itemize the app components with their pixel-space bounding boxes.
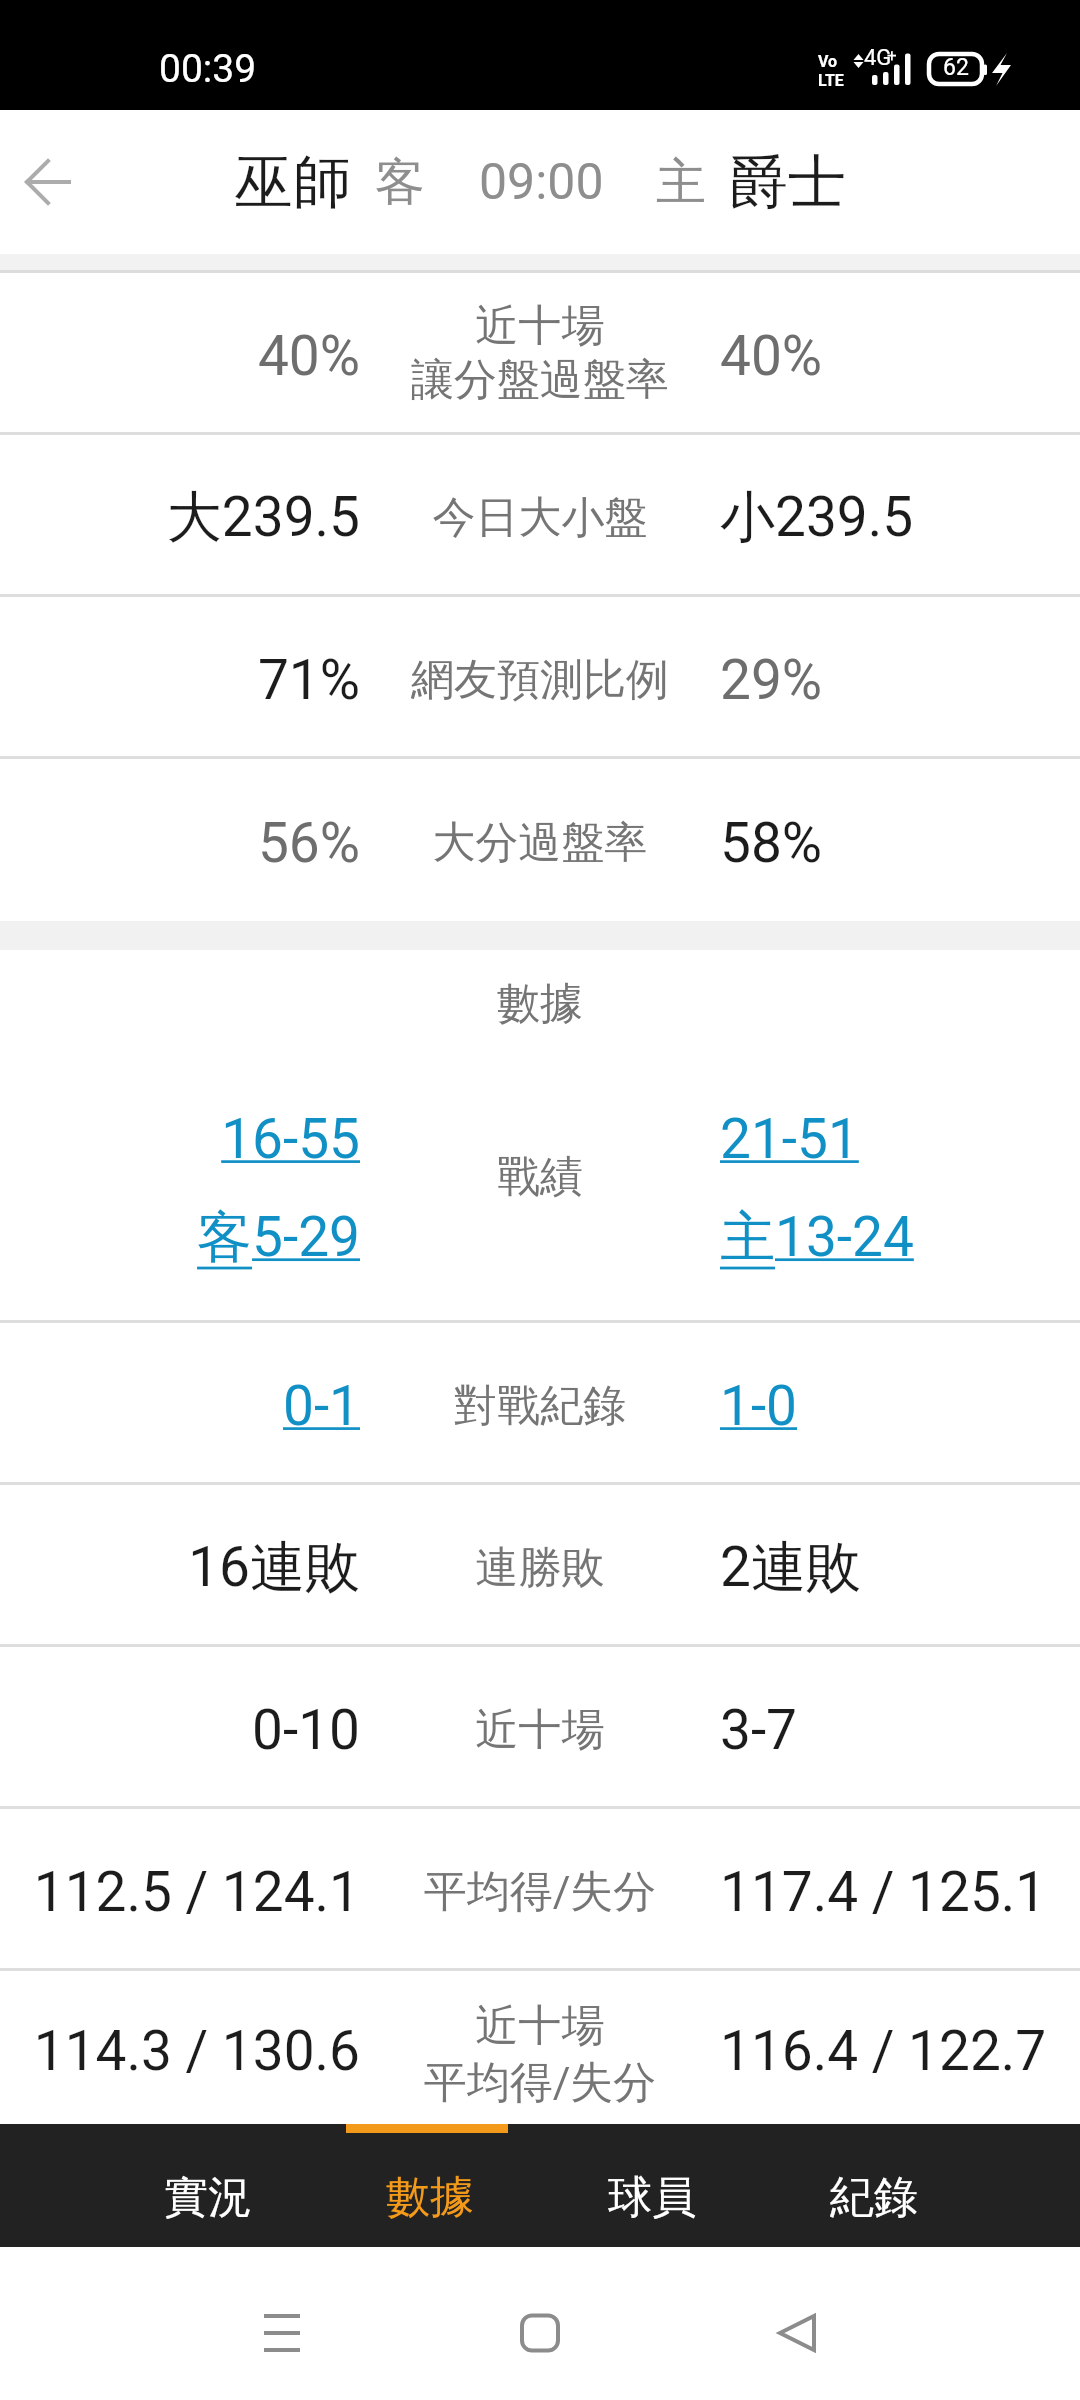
button[interactable]: 40% <box>0 273 1080 432</box>
button[interactable]: 0-10 <box>0 1647 1080 1806</box>
staticText: 112.5 / 124.1 <box>0 1860 360 1924</box>
staticText: 實況 <box>164 2170 252 2225</box>
staticText: 62 <box>943 54 969 81</box>
staticText: 4G <box>864 45 892 71</box>
button[interactable]: 16連敗 <box>0 1485 1080 1644</box>
button[interactable]: 114.3 / 130.6 <box>0 1971 1080 2124</box>
staticText: 小239.5 <box>720 483 1080 552</box>
staticText: 21-51 主13-24 <box>720 1107 1080 1272</box>
staticText: LTE <box>818 71 844 90</box>
staticText: 71% <box>0 648 360 712</box>
staticText: 大分過盤率 <box>360 816 720 870</box>
button[interactable]: Back <box>737 2273 857 2393</box>
button[interactable]: 大239.5 <box>0 435 1080 594</box>
staticText: 戰績 <box>360 1150 720 1204</box>
staticText: + <box>887 45 897 65</box>
staticText: 3-7 <box>720 1698 1080 1762</box>
button[interactable]: 球員 <box>541 2124 763 2247</box>
button[interactable]: 71% <box>0 597 1080 756</box>
staticText: 2連敗 <box>720 1533 1080 1602</box>
staticText: 大239.5 <box>0 483 360 552</box>
staticText: 1-0 <box>720 1374 1080 1438</box>
button[interactable]: Recent apps <box>222 2273 342 2393</box>
staticText: 對戰紀錄 <box>360 1379 720 1433</box>
staticText: 56% <box>0 811 360 875</box>
staticText: 客 <box>375 151 425 214</box>
button[interactable]: 紀錄 <box>763 2124 985 2247</box>
button[interactable]: 0-1 <box>0 1323 1080 1482</box>
staticText: 數據 <box>497 977 583 1031</box>
staticText: 近十場 平均得/失分 <box>360 1999 720 2110</box>
button[interactable]: 16-55 客5-29 <box>0 1058 1080 1320</box>
button[interactable]: 112.5 / 124.1 <box>0 1809 1080 1968</box>
staticText: 連勝敗 <box>360 1541 720 1595</box>
button[interactable]: 實況 <box>97 2124 319 2247</box>
staticText: 114.3 / 130.6 <box>0 2019 360 2083</box>
staticText: 40% <box>0 324 360 388</box>
button[interactable]: Home <box>480 2273 600 2393</box>
staticText: 巫師 <box>235 146 351 219</box>
staticText: 58% <box>720 811 1080 875</box>
staticText: 近十場 <box>360 1703 720 1757</box>
staticText: 09:00 <box>479 153 604 212</box>
staticText: 近十場 讓分盤過盤率 <box>360 299 720 407</box>
staticText: 16-55 客5-29 <box>0 1107 360 1272</box>
button[interactable]: 56% <box>0 759 1080 921</box>
staticText: 00:39 <box>159 46 257 92</box>
staticText: 爵士 <box>730 146 846 219</box>
staticText: 平均得/失分 <box>360 1865 720 1919</box>
staticText: 球員 <box>608 2170 696 2225</box>
staticText: 16連敗 <box>0 1533 360 1602</box>
staticText: 紀錄 <box>830 2170 918 2225</box>
button[interactable]: 數據 <box>319 2124 541 2247</box>
staticText: 網友預測比例 <box>360 653 720 707</box>
staticText: 數據 <box>386 2170 474 2225</box>
staticText: 今日大小盤 <box>360 491 720 545</box>
staticText: 0-10 <box>0 1698 360 1762</box>
staticText: 0-1 <box>0 1374 360 1438</box>
button[interactable]: Back <box>16 150 80 214</box>
staticText: 29% <box>720 648 1080 712</box>
staticText: 117.4 / 125.1 <box>720 1860 1080 1924</box>
staticText: 主 <box>656 151 706 214</box>
staticText: 116.4 / 122.7 <box>720 2019 1080 2083</box>
staticText: Vo <box>818 52 838 71</box>
staticText: 40% <box>720 324 1080 388</box>
